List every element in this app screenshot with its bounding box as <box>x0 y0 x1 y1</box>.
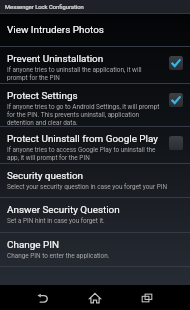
staticText: Messenger Lock Configuration <box>5 4 84 11</box>
button[interactable]: Home <box>69 285 121 310</box>
staticText: If anyone tries to uninstall the applica… <box>7 66 161 82</box>
staticText: Select your security question in case yo… <box>7 183 167 191</box>
button[interactable]: View Intruders Photos <box>0 14 190 47</box>
button[interactable]: Change PIN <box>0 233 190 267</box>
staticText: Protect Settings <box>7 90 78 102</box>
button[interactable]: Protect Uninstall from Google Play <box>0 127 190 164</box>
staticText: Security question <box>7 170 84 182</box>
button[interactable]: Recents <box>121 285 173 310</box>
staticText: Change PIN <box>7 239 59 251</box>
button[interactable]: Toggle Prevent Uninstallation <box>161 53 190 84</box>
staticText: If anyone tries to access Google Play to… <box>7 146 161 162</box>
staticText: Prevent Uninstallation <box>7 53 104 65</box>
button[interactable]: Security question <box>0 164 190 198</box>
button[interactable]: Toggle Protect Uninstall from Google Pla… <box>161 133 190 164</box>
staticText: View Intruders Photos <box>7 24 104 36</box>
button[interactable]: Toggle Protect Settings <box>161 90 190 127</box>
button[interactable]: Back <box>17 285 69 310</box>
staticText: Protect Uninstall from Google Play <box>7 133 158 145</box>
staticText: Set a PIN hint in case you forget it. <box>7 217 105 225</box>
staticText: Change PIN to enter the application. <box>7 252 110 260</box>
staticText: Answer Security Question <box>7 204 120 216</box>
button[interactable]: Answer Security Question <box>0 198 190 233</box>
staticText: If anyone tries to go to Android Setting… <box>7 103 161 127</box>
button[interactable]: Protect Settings <box>0 84 190 127</box>
button[interactable]: Prevent Uninstallation <box>0 47 190 84</box>
